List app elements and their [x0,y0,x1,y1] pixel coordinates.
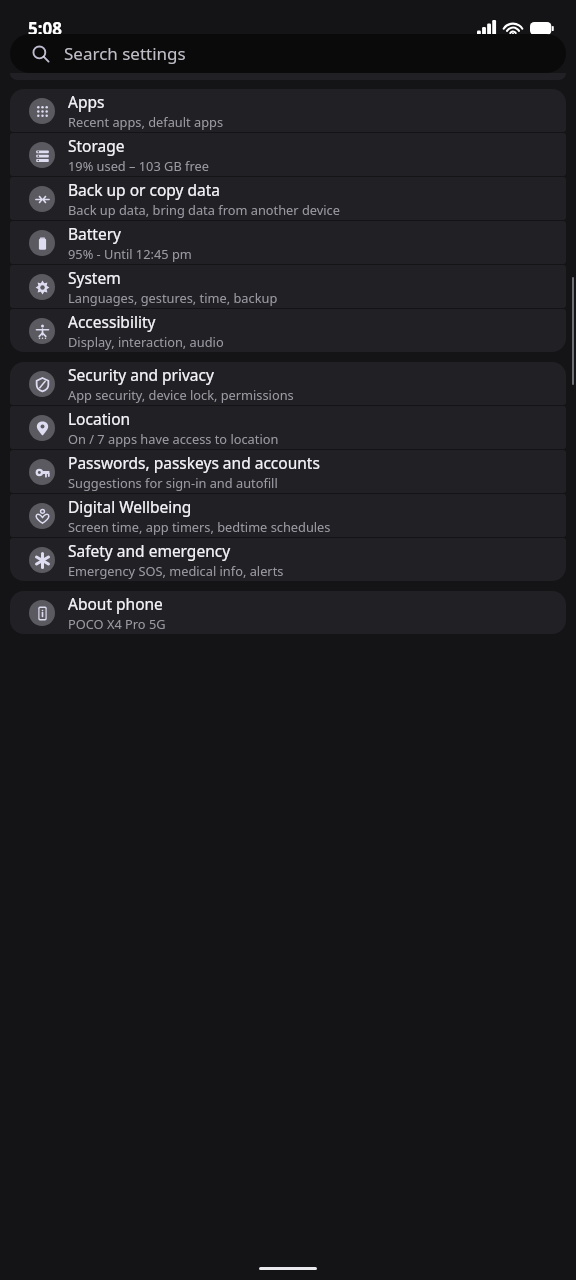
button[interactable]: Apps [10,89,566,132]
staticText: Battery [68,223,122,244]
staticText: System [68,267,121,288]
staticText: Apps [68,91,105,112]
staticText: About phone [68,593,163,614]
staticText: Location [68,408,131,429]
staticText: Safety and emergency [68,540,231,561]
staticText: Back up data, bring data from another de… [68,201,340,218]
button[interactable]: Battery [10,221,566,264]
button[interactable]: Security and privacy [10,362,566,405]
staticText: Screen time, app timers, bedtime schedul… [68,518,331,535]
staticText: Security and privacy [68,364,214,385]
button[interactable]: Search settings [10,34,566,73]
staticText: App security, device lock, permissions [68,386,294,403]
staticText: Recent apps, default apps [68,113,224,130]
staticText: 19% used – 103 GB free [68,157,209,174]
staticText: Back up or copy data [68,179,220,200]
staticText: Suggestions for sign-in and autofill [68,474,278,491]
staticText: Accessibility [68,311,156,332]
staticText: Storage [68,135,125,156]
button[interactable]: Back up or copy data [10,177,566,220]
staticText: Display, interaction, audio [68,333,224,350]
button[interactable]: Accessibility [10,309,566,352]
button[interactable]: Safety and emergency [10,538,566,581]
button[interactable]: Location [10,406,566,449]
button[interactable]: Digital Wellbeing [10,494,566,537]
button[interactable]: Passwords, passkeys and accounts [10,450,566,493]
button[interactable]: System [10,265,566,308]
staticText: On / 7 apps have access to location [68,430,279,447]
staticText: 5:08 [28,17,62,40]
staticText: Languages, gestures, time, backup [68,289,278,306]
button[interactable]: About phone [10,591,566,634]
staticText: Passwords, passkeys and accounts [68,452,320,473]
button[interactable]: Storage [10,133,566,176]
staticText: POCO X4 Pro 5G [68,615,166,632]
staticText: 95% - Until 12:45 pm [68,245,192,262]
staticText: Digital Wellbeing [68,496,192,517]
staticText: Search settings [64,42,186,65]
staticText: Emergency SOS, medical info, alerts [68,562,284,579]
